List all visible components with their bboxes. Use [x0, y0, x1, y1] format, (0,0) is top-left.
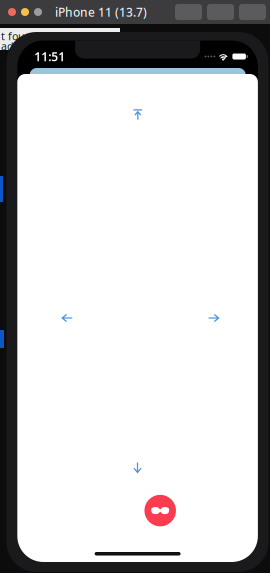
button[interactable]: Scroll to top	[125, 101, 150, 128]
staticText: ad	[1, 39, 14, 53]
button[interactable]: Previous	[54, 306, 80, 330]
staticText: iPhone 11 (13.7)	[55, 4, 147, 20]
button[interactable]: End call	[144, 495, 176, 526]
button[interactable]: Scroll to bottom	[125, 454, 150, 481]
button[interactable]: Next	[200, 306, 227, 330]
staticText: t fou	[1, 29, 25, 43]
button[interactable]: Simulator toolbar	[207, 4, 234, 20]
staticText: 11:51	[34, 48, 65, 64]
button[interactable]: Simulator toolbar	[239, 4, 266, 20]
button[interactable]: Simulator toolbar	[175, 4, 202, 20]
